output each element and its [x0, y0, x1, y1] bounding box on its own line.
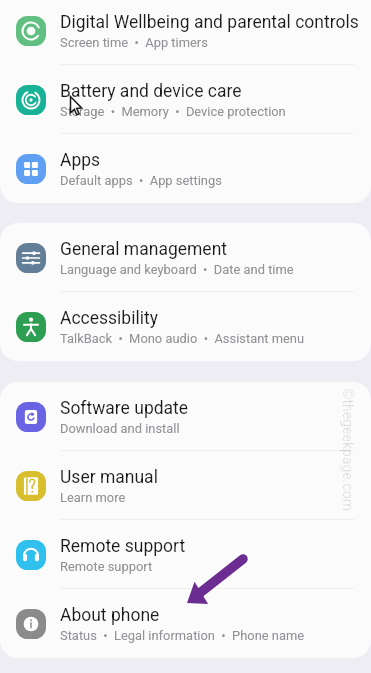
staticText: Remote support	[60, 536, 186, 557]
staticText: ©thegeekpage.com	[339, 388, 355, 511]
staticText: About phone	[60, 605, 160, 626]
staticText: Battery and device care	[60, 81, 242, 102]
button[interactable]: User manual	[0, 451, 371, 520]
staticText: Storage • Memory • Device protection	[60, 104, 286, 119]
staticText: Learn more	[60, 490, 126, 505]
staticText: Download and install	[60, 421, 180, 436]
button[interactable]: Software update	[0, 382, 371, 451]
staticText: User manual	[60, 467, 158, 488]
staticText: General management	[60, 239, 228, 260]
staticText: Screen time • App timers	[60, 35, 208, 50]
other: Annotation arrow	[0, 0, 371, 673]
button[interactable]: Battery and device care	[0, 65, 371, 134]
staticText: Default apps • App settings	[60, 173, 222, 188]
staticText: TalkBack • Mono audio • Assistant menu	[60, 331, 305, 346]
staticText: Status • Legal information • Phone name	[60, 628, 305, 643]
staticText: Digital Wellbeing and parental controls	[60, 12, 359, 33]
button[interactable]: Apps	[0, 134, 371, 203]
staticText: Accessibility	[60, 308, 158, 329]
staticText: Language and keyboard • Date and time	[60, 262, 294, 277]
staticText: Apps	[60, 150, 101, 171]
button[interactable]: About phone	[0, 589, 371, 658]
staticText: Software update	[60, 398, 189, 419]
button[interactable]: Remote support	[0, 520, 371, 589]
button[interactable]: Digital Wellbeing and parental controls	[0, 0, 371, 65]
button[interactable]: Accessibility	[0, 292, 371, 361]
staticText: Remote support	[60, 559, 153, 574]
button[interactable]: General management	[0, 223, 371, 292]
